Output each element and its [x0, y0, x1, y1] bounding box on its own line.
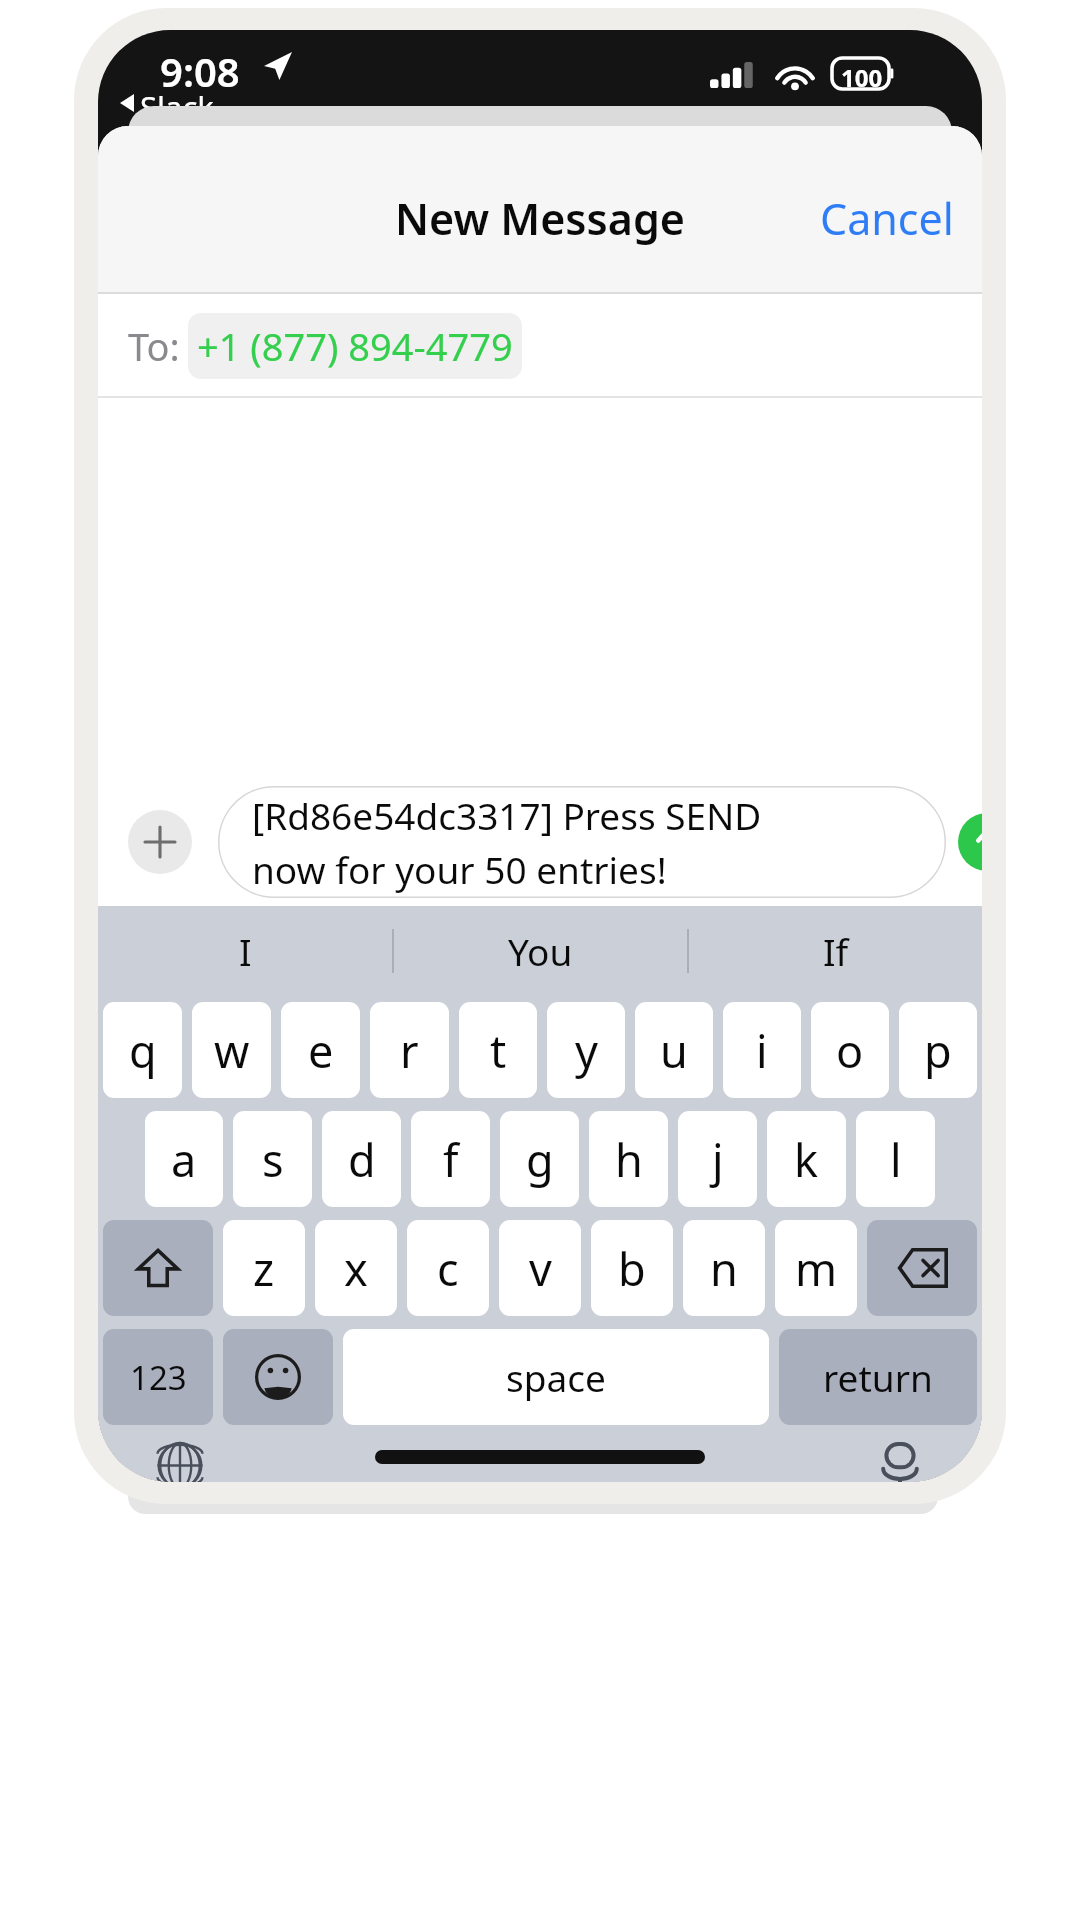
button[interactable]: w	[192, 1002, 271, 1098]
staticText: New Message	[395, 189, 685, 248]
staticText: o	[836, 1020, 864, 1081]
staticText: g	[526, 1129, 554, 1190]
button[interactable]: Dictate	[864, 1443, 936, 1482]
button[interactable]: Backspace	[867, 1220, 977, 1316]
staticText: +1 (877) 894-4779	[197, 320, 513, 372]
staticText: w	[214, 1020, 250, 1081]
button[interactable]: n	[683, 1220, 765, 1316]
button[interactable]: Change keyboard	[144, 1443, 216, 1482]
staticText: x	[344, 1238, 368, 1299]
button[interactable]: k	[767, 1111, 846, 1207]
button[interactable]: Emoji	[223, 1329, 333, 1425]
staticText: return	[823, 1352, 933, 1402]
button[interactable]: x	[315, 1220, 397, 1316]
button[interactable]: l	[856, 1111, 935, 1207]
button[interactable]: p	[899, 1002, 977, 1098]
staticText: n	[710, 1238, 738, 1299]
button[interactable]: a	[145, 1111, 223, 1207]
button[interactable]: You	[394, 906, 687, 996]
staticText: h	[615, 1129, 643, 1190]
staticText: To:	[128, 320, 180, 372]
button[interactable]: h	[589, 1111, 668, 1207]
staticText: b	[618, 1238, 646, 1299]
staticText: Slack	[140, 86, 214, 128]
button[interactable]: u	[635, 1002, 713, 1098]
button[interactable]: o	[811, 1002, 889, 1098]
staticText: d	[348, 1129, 376, 1190]
staticText: now for your 50 entries!	[252, 844, 667, 894]
staticText: 9:08	[160, 44, 240, 98]
button[interactable]: g	[500, 1111, 579, 1207]
staticText: y	[575, 1020, 598, 1081]
button[interactable]: q	[103, 1002, 182, 1098]
button[interactable]: Send	[958, 813, 982, 871]
staticText: z	[253, 1238, 275, 1299]
button[interactable]: y	[547, 1002, 625, 1098]
staticText: t	[490, 1020, 507, 1081]
button[interactable]: s	[233, 1111, 312, 1207]
button[interactable]: b	[591, 1220, 673, 1316]
staticText: Cancel	[820, 189, 954, 248]
staticText: s	[262, 1129, 284, 1190]
button[interactable]: j	[678, 1111, 757, 1207]
staticText: l	[890, 1129, 902, 1190]
button[interactable]: i	[723, 1002, 801, 1098]
staticText: j	[712, 1129, 724, 1190]
button[interactable]: v	[499, 1220, 581, 1316]
button[interactable]: f	[411, 1111, 490, 1207]
staticText: space	[506, 1352, 606, 1402]
staticText: m	[795, 1238, 838, 1299]
staticText: e	[308, 1020, 334, 1081]
button[interactable]: r	[370, 1002, 449, 1098]
staticText: You	[508, 926, 573, 976]
staticText: [Rd86e54dc3317] Press SEND	[252, 790, 762, 840]
button[interactable]: return	[779, 1329, 977, 1425]
staticText: v	[529, 1238, 552, 1299]
staticText: a	[171, 1129, 197, 1190]
staticText: 123	[130, 1355, 187, 1400]
button[interactable]: Cancel	[792, 173, 982, 264]
staticText: q	[129, 1020, 157, 1081]
button[interactable]: I	[98, 906, 392, 996]
button[interactable]: space	[343, 1329, 769, 1425]
button[interactable]: e	[281, 1002, 360, 1098]
button[interactable]: +1 (877) 894-4779	[188, 313, 522, 379]
button[interactable]: c	[407, 1220, 489, 1316]
button[interactable]: t	[459, 1002, 537, 1098]
staticText: If	[823, 926, 849, 976]
staticText: u	[660, 1020, 688, 1081]
staticText: 100	[841, 61, 883, 94]
staticText: i	[756, 1020, 768, 1081]
staticText: p	[924, 1020, 952, 1081]
button[interactable]: z	[223, 1220, 305, 1316]
button[interactable]: d	[322, 1111, 401, 1207]
staticText: c	[437, 1238, 459, 1299]
button[interactable]: Shift	[103, 1220, 213, 1316]
button[interactable]: [Rd86e54dc3317] Press SEND	[218, 786, 946, 898]
button[interactable]: Add attachment	[128, 810, 192, 874]
staticText: k	[794, 1129, 819, 1190]
button[interactable]: 123	[103, 1329, 213, 1425]
button[interactable]: If	[689, 906, 982, 996]
staticText: I	[239, 926, 252, 976]
staticText: r	[400, 1020, 419, 1081]
staticText: f	[443, 1129, 459, 1190]
button[interactable]: m	[775, 1220, 857, 1316]
